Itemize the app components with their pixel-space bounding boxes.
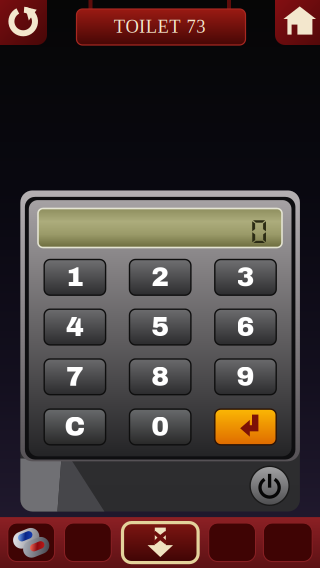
button[interactable]: 4: [44, 309, 106, 345]
staticText: 2: [151, 263, 169, 292]
staticText: 8: [151, 362, 169, 391]
button[interactable]: 1: [44, 259, 106, 295]
button[interactable]: 2: [129, 259, 191, 295]
button[interactable]: Home: [275, 0, 320, 45]
button[interactable]: 7: [44, 359, 106, 395]
staticText: 5: [151, 312, 169, 341]
staticText: 0: [151, 412, 169, 441]
staticText: 4: [66, 312, 84, 341]
button[interactable]: Hide inventory: [122, 523, 198, 563]
button[interactable]: 9: [215, 359, 276, 395]
staticText: 7: [187, 16, 196, 37]
staticText: C: [64, 412, 85, 441]
staticText: L: [146, 16, 157, 37]
staticText: T: [114, 16, 125, 37]
staticText: 9: [236, 362, 254, 391]
staticText: 7: [66, 362, 84, 391]
staticText: E: [157, 16, 168, 37]
button[interactable]: 5: [129, 309, 191, 345]
button[interactable]: Inventory item: ornate clasps: [8, 523, 55, 562]
staticText: T: [169, 16, 180, 37]
staticText: [181, 16, 186, 37]
button[interactable]: Empty inventory slot: [263, 523, 312, 562]
button[interactable]: 6: [215, 309, 276, 345]
staticText: 0: [250, 216, 268, 245]
button[interactable]: Restart: [0, 0, 47, 45]
button[interactable]: C: [44, 409, 106, 445]
button[interactable]: Power: [250, 466, 289, 505]
staticText: 6: [236, 312, 254, 341]
button[interactable]: 3: [215, 259, 276, 295]
button[interactable]: Enter: [215, 409, 276, 445]
staticText: I: [139, 16, 145, 37]
staticText: 1: [66, 263, 84, 292]
button[interactable]: 8: [129, 359, 191, 395]
staticText: 3: [236, 263, 254, 292]
button[interactable]: 0: [129, 409, 191, 445]
button[interactable]: Empty inventory slot: [64, 523, 111, 562]
staticText: 3: [196, 16, 205, 37]
button[interactable]: Empty inventory slot: [209, 523, 255, 562]
staticText: O: [125, 16, 138, 37]
